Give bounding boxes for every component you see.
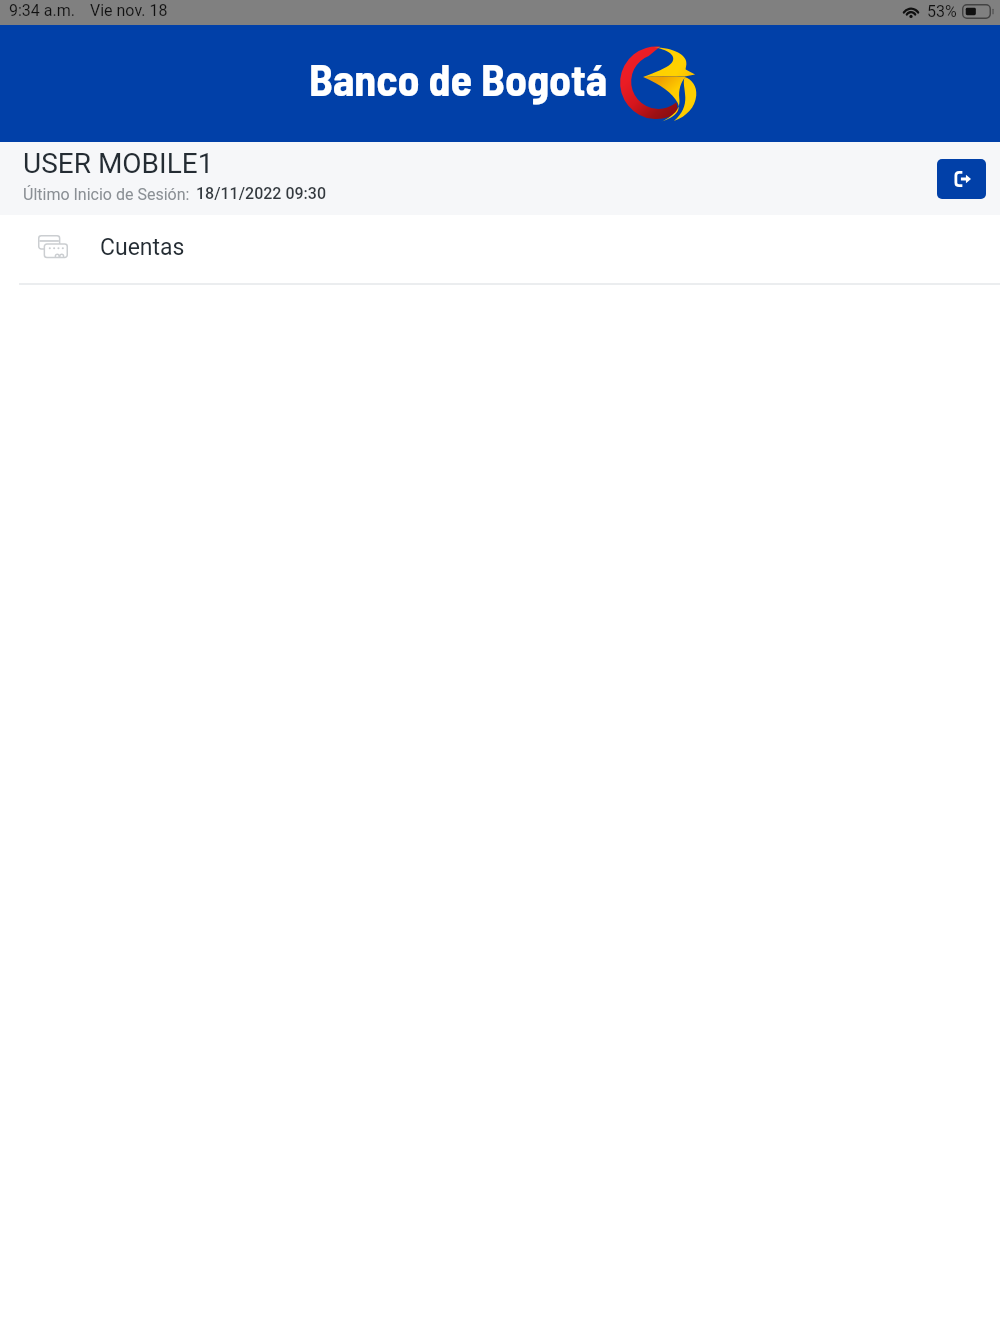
staticText: Vie nov. 18 xyxy=(90,1,168,20)
button[interactable]: Cerrar sesión xyxy=(937,159,986,199)
staticText: 18/11/2022 09:30 xyxy=(196,184,327,203)
staticText: Último Inicio de Sesión: xyxy=(23,185,190,204)
staticText: Banco de Bogotá xyxy=(309,52,608,105)
staticText: USER MOBILE1 xyxy=(23,147,214,180)
staticText: 53% xyxy=(927,2,957,21)
button[interactable]: Cuentas xyxy=(0,215,1000,285)
staticText: 9:34 a.m. xyxy=(9,1,75,20)
staticText: Cuentas xyxy=(100,234,185,261)
